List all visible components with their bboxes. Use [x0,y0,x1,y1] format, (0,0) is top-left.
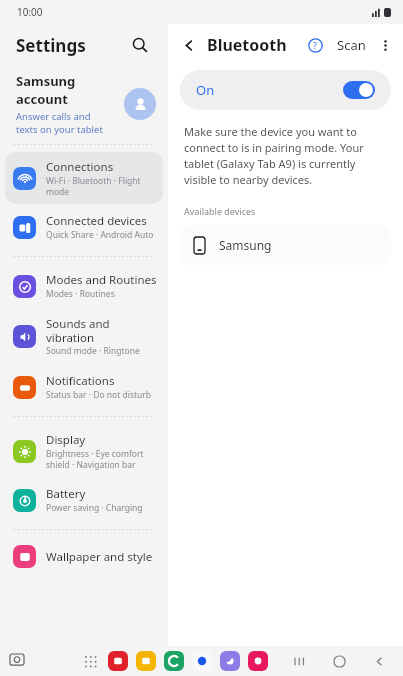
button[interactable]: Connections [5,152,163,204]
staticText: Connections [46,159,114,175]
staticText: Power saving · Charging [46,502,143,514]
staticText: Modes · Routines [46,288,115,300]
button[interactable]: All apps [80,651,100,671]
button[interactable]: Notifications [5,366,163,408]
staticText: Battery [46,486,86,502]
button[interactable]: Battery [5,479,163,521]
staticText: Connected devices [46,213,147,229]
staticText: Make sure the device you want to connect… [184,124,387,187]
button[interactable]: app4 [192,651,212,671]
staticText: Scan [337,36,366,54]
staticText: Display [46,432,86,448]
staticText: Modes and Routines [46,272,157,288]
staticText: Quick Share · Android Auto [46,229,154,241]
button[interactable]: Help [302,32,328,58]
staticText: Sound mode · Ringtone [46,345,140,357]
staticText: account [16,90,68,108]
button[interactable]: app1 [108,651,128,671]
button[interactable]: Samsung [0,66,168,142]
staticText: On [196,81,343,99]
button[interactable]: On [180,70,391,110]
staticText: Notifications [46,373,115,389]
button[interactable]: Sounds and vibration [5,309,163,364]
staticText: Bluetooth [207,34,287,56]
button[interactable]: Home [329,651,349,671]
staticText: Wi-Fi · Bluetooth · Flight mode [46,175,141,197]
button[interactable]: app6 [248,651,268,671]
button[interactable]: Display [5,425,163,477]
button[interactable]: Modes and Routines [5,265,163,307]
button[interactable]: Samsung [180,225,391,265]
button[interactable]: app5 [220,651,240,671]
button[interactable]: Recents [289,651,309,671]
staticText: texts on your tablet [16,123,103,136]
button[interactable]: Connected devices [5,206,163,248]
staticText: Status bar · Do not disturb [46,389,152,401]
button[interactable]: Wallpaper and style [5,538,163,575]
staticText: Samsung [16,72,76,90]
button[interactable]: Scan [333,32,370,58]
button[interactable]: app3 [164,651,184,671]
staticText: Available devices [184,205,256,217]
staticText: Answer calls and [16,110,91,123]
button[interactable]: Search [126,31,154,59]
staticText: 10:00 [17,5,43,19]
staticText: Settings [16,34,86,57]
button[interactable]: Back [369,651,389,671]
staticText: Brightness · Eye comfort shield · Naviga… [46,448,144,470]
button[interactable]: More options [373,33,397,57]
button[interactable]: app2 [136,651,156,671]
staticText: Samsung [219,237,272,253]
staticText: ? [313,39,317,51]
staticText: Sounds and vibration [46,316,110,345]
button[interactable]: Recent apps history [6,650,28,672]
button[interactable]: Back [176,32,202,58]
staticText: Wallpaper and style [46,549,153,565]
